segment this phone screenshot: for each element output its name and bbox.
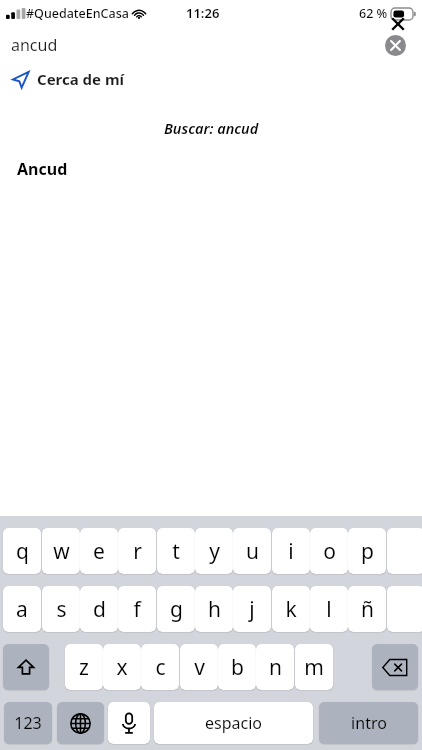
button[interactable]: Cerrar [386, 12, 410, 36]
button[interactable] [387, 528, 422, 574]
button[interactable]: p [348, 528, 386, 574]
staticText: 11:26 [186, 4, 220, 22]
button[interactable]: t [157, 528, 195, 574]
staticText: r [133, 537, 142, 566]
staticText: w [53, 537, 70, 566]
button[interactable]: k [272, 586, 310, 632]
staticText: o [323, 537, 336, 566]
staticText: a [16, 595, 28, 624]
staticText: s [56, 595, 67, 624]
button[interactable]: i [272, 528, 310, 574]
staticText: p [361, 537, 374, 566]
staticText: m [304, 653, 324, 682]
staticText: f [133, 595, 141, 624]
button[interactable]: j [233, 586, 271, 632]
button[interactable] [387, 586, 422, 632]
staticText: #QuedateEnCasa [26, 5, 129, 22]
button[interactable]: Mayúsculas [3, 644, 49, 690]
button[interactable]: v [180, 644, 218, 690]
button[interactable]: a [3, 586, 41, 632]
staticText: u [246, 537, 259, 566]
staticText: z [79, 653, 89, 682]
staticText: g [170, 595, 183, 624]
button[interactable]: y [195, 528, 233, 574]
button[interactable]: g [157, 586, 195, 632]
button[interactable]: m [295, 644, 333, 690]
button[interactable]: f [118, 586, 156, 632]
staticText: i [288, 537, 294, 566]
button[interactable]: l [310, 586, 348, 632]
staticText: q [16, 537, 29, 566]
staticText: v [194, 653, 205, 682]
button[interactable]: s [42, 586, 80, 632]
button[interactable]: q [3, 528, 41, 574]
button[interactable]: ñ [348, 586, 386, 632]
button[interactable]: espacio [154, 702, 313, 744]
button[interactable]: w [42, 528, 80, 574]
button[interactable]: Borrar [372, 644, 418, 690]
staticText: ñ [361, 595, 374, 624]
staticText: intro [351, 712, 387, 734]
staticText: espacio [205, 712, 262, 734]
staticText: y [209, 537, 220, 566]
staticText: c [155, 653, 166, 682]
button[interactable]: Dictado por voz [108, 702, 150, 744]
staticText: d [93, 595, 106, 624]
staticText: n [269, 653, 282, 682]
staticText: e [93, 537, 105, 566]
button[interactable]: Ancud [0, 153, 422, 185]
staticText: l [326, 595, 332, 624]
staticText: t [172, 537, 180, 566]
staticText: h [208, 595, 221, 624]
button[interactable]: n [256, 644, 294, 690]
button[interactable]: o [310, 528, 348, 574]
button[interactable]: c [141, 644, 179, 690]
staticText: 62 % [359, 5, 388, 22]
staticText: Cerca de mí [37, 69, 125, 89]
button[interactable]: h [195, 586, 233, 632]
button[interactable]: e [80, 528, 118, 574]
button[interactable]: r [118, 528, 156, 574]
button[interactable]: z [65, 644, 103, 690]
staticText: b [231, 653, 244, 682]
staticText: j [249, 595, 255, 624]
button[interactable]: 123 [4, 702, 52, 744]
staticText: x [116, 653, 128, 682]
button[interactable]: u [233, 528, 271, 574]
button[interactable]: Borrar texto [385, 35, 406, 56]
staticText: Buscar: ancud [164, 118, 259, 138]
button[interactable]: intro [319, 702, 418, 744]
staticText: ancud [11, 34, 58, 56]
button[interactable]: Cambiar teclado [57, 702, 104, 744]
staticText: k [285, 595, 297, 624]
button[interactable]: d [80, 586, 118, 632]
button[interactable]: Cerca de mí [0, 64, 422, 94]
button[interactable]: b [218, 644, 256, 690]
staticText: Ancud [17, 158, 68, 180]
button[interactable]: x [103, 644, 141, 690]
staticText: 123 [14, 712, 42, 734]
